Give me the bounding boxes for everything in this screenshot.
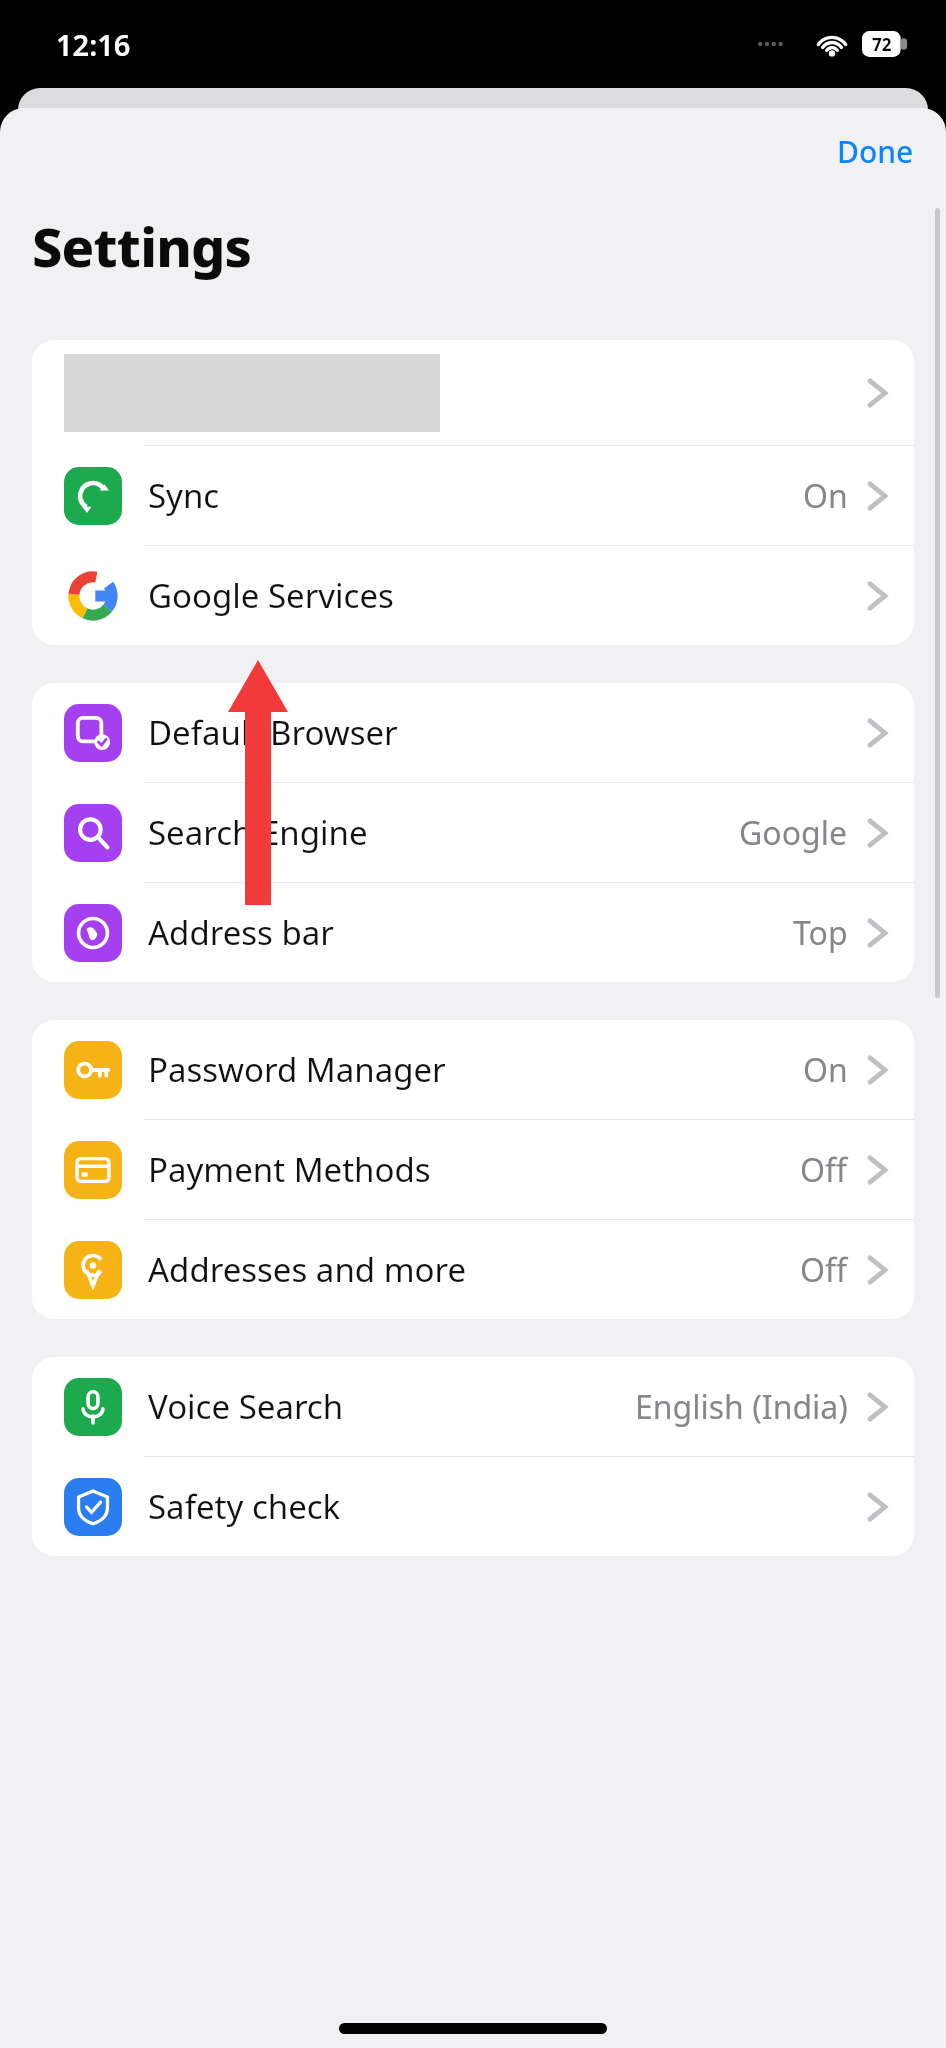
staticText: Off [800,1248,848,1292]
button[interactable] [32,340,914,445]
staticText: Settings [32,209,252,283]
staticText: Top [793,911,848,955]
button[interactable]: Search Engine [32,783,914,882]
staticText: Search Engine [148,810,368,855]
staticText: Voice Search [148,1384,344,1429]
staticText: Google [739,811,848,855]
staticText: On [803,474,848,518]
staticText: Address bar [148,910,334,955]
button[interactable]: Safety check [32,1457,914,1556]
staticText: Password Manager [148,1047,446,1092]
staticText: Google Services [148,573,394,618]
button[interactable]: Password Manager [32,1020,914,1119]
button[interactable]: Payment Methods [32,1120,914,1219]
button[interactable]: Sync [32,446,914,545]
staticText: English (India) [635,1385,848,1429]
staticText: Safety check [148,1484,341,1529]
button[interactable]: Default Browser [32,683,914,782]
staticText: On [803,1048,848,1092]
staticText: Done [837,131,914,172]
button[interactable]: Google Services [32,546,914,645]
button[interactable]: Address bar [32,883,914,982]
staticText: 12:16 [56,25,131,64]
staticText: 72 [872,33,892,56]
staticText: Payment Methods [148,1147,431,1192]
staticText: Addresses and more [148,1247,467,1292]
button[interactable]: Done [821,123,930,180]
staticText: Off [800,1148,848,1192]
button[interactable]: Voice Search [32,1357,914,1456]
staticText: Default Browser [148,710,398,755]
button[interactable]: Addresses and more [32,1220,914,1319]
staticText: Sync [148,473,220,518]
